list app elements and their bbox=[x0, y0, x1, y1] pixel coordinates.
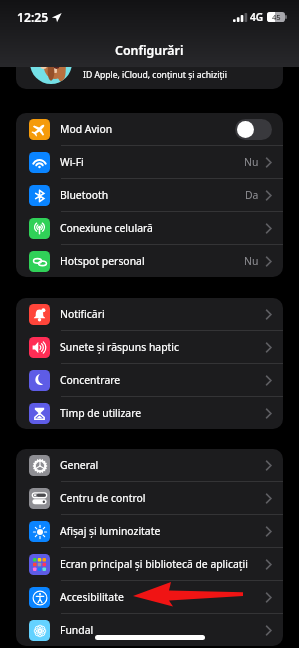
staticText: General bbox=[60, 458, 99, 472]
staticText: Hotspot personal bbox=[60, 254, 145, 268]
button[interactable]: Conexiune celulară bbox=[16, 212, 283, 244]
button[interactable]: Afișaj și luminozitate bbox=[16, 515, 283, 547]
staticText: Centru de control bbox=[60, 491, 146, 505]
button[interactable]: Notificări bbox=[16, 298, 283, 330]
button[interactable]: Mod Avion bbox=[16, 113, 283, 145]
staticText: Mod Avion bbox=[60, 122, 113, 136]
staticText: Nu bbox=[244, 254, 259, 268]
button[interactable]: Concentrare bbox=[16, 364, 283, 396]
button[interactable]: Centru de control bbox=[16, 482, 283, 514]
staticText: Ecran principal și bibliotecă de aplicaț… bbox=[60, 557, 248, 571]
staticText: Da bbox=[245, 188, 259, 202]
button[interactable]: Hotspot personal bbox=[16, 245, 283, 277]
staticText: 45 bbox=[272, 12, 281, 22]
staticText: 4G bbox=[250, 10, 264, 24]
staticText: Configurări bbox=[115, 42, 184, 59]
button[interactable]: Accesibilitate bbox=[16, 581, 283, 613]
button[interactable]: Bluetooth bbox=[16, 179, 283, 211]
staticText: Timp de utilizare bbox=[60, 406, 142, 420]
staticText: Conexiune celulară bbox=[60, 221, 153, 235]
staticText: Concentrare bbox=[60, 373, 121, 387]
staticText: Sunete și răspuns haptic bbox=[60, 340, 179, 354]
button[interactable]: Timp de utilizare bbox=[16, 397, 283, 429]
staticText: Bluetooth bbox=[60, 188, 109, 202]
staticText: Wi-Fi bbox=[60, 155, 84, 169]
button[interactable]: Mod Avion comutator bbox=[235, 119, 272, 140]
staticText: 12:25 bbox=[17, 9, 49, 26]
staticText: Accesibilitate bbox=[60, 590, 124, 604]
button[interactable]: ID Apple, iCloud, conținut și achiziții bbox=[16, 40, 283, 89]
button[interactable]: Sunete și răspuns haptic bbox=[16, 331, 283, 363]
button[interactable]: Ecran principal și bibliotecă de aplicaț… bbox=[16, 548, 283, 580]
staticText: Fundal bbox=[60, 623, 94, 637]
button[interactable]: Fundal bbox=[16, 614, 283, 646]
staticText: Nu bbox=[244, 155, 259, 169]
button[interactable]: Wi-Fi bbox=[16, 146, 283, 178]
button[interactable]: General bbox=[16, 449, 283, 481]
staticText: ID Apple, iCloud, conținut și achiziții bbox=[83, 69, 228, 81]
staticText: Afișaj și luminozitate bbox=[60, 524, 161, 538]
staticText: Notificări bbox=[60, 307, 105, 321]
